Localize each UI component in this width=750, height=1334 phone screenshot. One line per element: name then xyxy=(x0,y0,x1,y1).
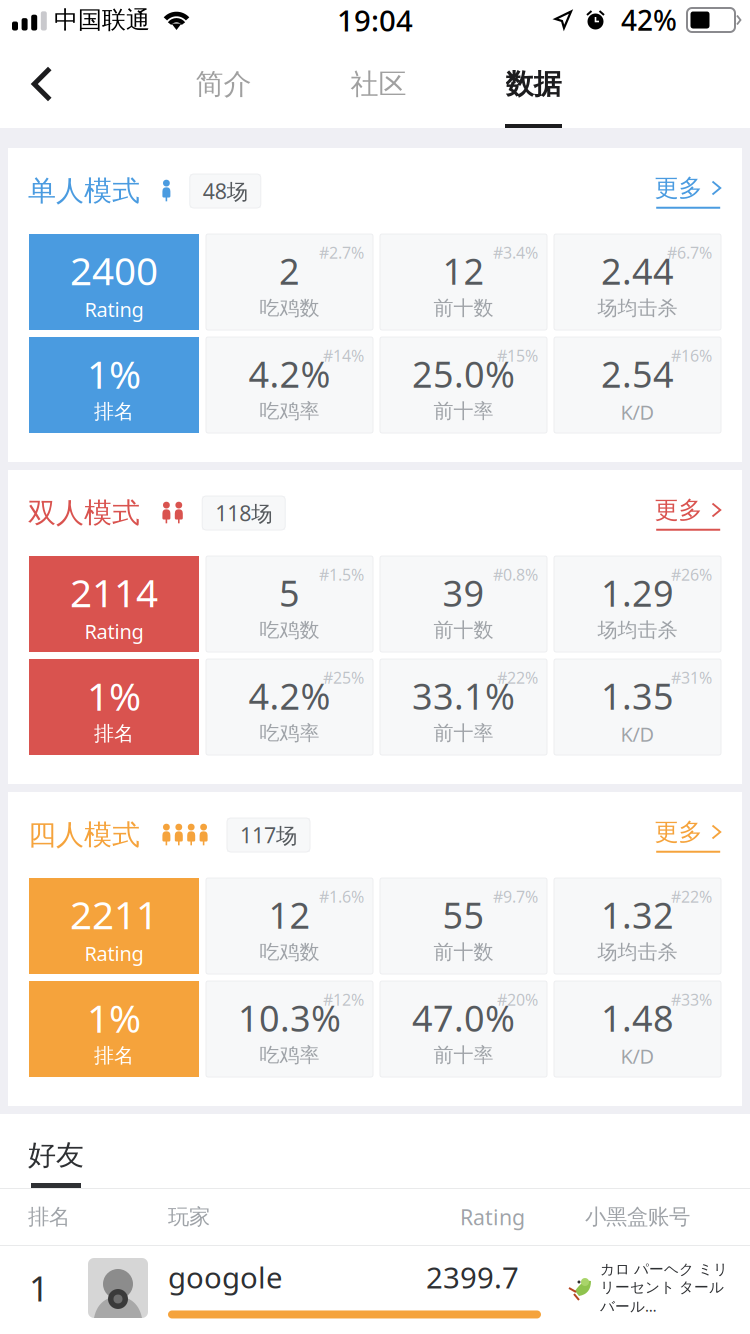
button[interactable]: 1 xyxy=(0,1246,750,1330)
staticText: 前十率 xyxy=(433,1043,493,1067)
staticText: 2211 xyxy=(70,888,158,940)
staticText: K/D xyxy=(620,1043,654,1069)
staticText: 排名 xyxy=(94,399,134,424)
staticText: 1 xyxy=(29,1265,49,1311)
staticText: 前十率 xyxy=(433,721,493,745)
staticText: #14% xyxy=(323,345,364,366)
button[interactable]: 更多 xyxy=(654,817,722,853)
staticText: 前十数 xyxy=(433,296,493,320)
staticText: #15% xyxy=(497,345,538,366)
staticText: 前十率 xyxy=(433,399,493,423)
staticText: 12 xyxy=(268,891,310,939)
staticText: 117场 xyxy=(240,821,297,849)
staticText: 1.32 xyxy=(601,891,674,939)
staticText: #6.7% xyxy=(667,242,712,263)
button[interactable]: 社区 xyxy=(301,40,456,128)
staticText: 吃鸡率 xyxy=(259,721,319,745)
staticText: 排名 xyxy=(94,1043,134,1068)
staticText: #22% xyxy=(671,886,712,907)
button[interactable]: 更多 xyxy=(654,495,722,531)
staticText: 场均击杀 xyxy=(597,296,677,320)
staticText: #9.7% xyxy=(493,886,538,907)
staticText: Rating xyxy=(84,296,143,322)
staticText: #12% xyxy=(323,989,364,1010)
staticText: #20% xyxy=(497,989,538,1010)
staticText: 玩家 xyxy=(168,1204,210,1230)
staticText: #1.5% xyxy=(319,564,364,585)
staticText: 双人模式 xyxy=(28,496,140,530)
staticText: 小黑盒账号 xyxy=(585,1204,690,1230)
staticText: #25% xyxy=(323,667,364,688)
staticText: 前十数 xyxy=(433,618,493,642)
staticText: 社区 xyxy=(350,67,406,101)
button[interactable]: Back xyxy=(0,40,84,128)
staticText: 场均击杀 xyxy=(597,940,677,964)
staticText: 19:04 xyxy=(337,0,413,39)
staticText: #33% xyxy=(671,989,712,1010)
staticText: 2400 xyxy=(70,244,158,296)
staticText: 2114 xyxy=(70,566,158,618)
staticText: 118场 xyxy=(215,499,272,527)
staticText: Rating xyxy=(84,940,143,966)
staticText: 2 xyxy=(279,247,300,295)
staticText: 2.44 xyxy=(601,247,674,295)
staticText: 吃鸡数 xyxy=(259,940,319,964)
staticText: #3.4% xyxy=(493,242,538,263)
staticText: #31% xyxy=(671,667,712,688)
staticText: #26% xyxy=(671,564,712,585)
staticText: K/D xyxy=(620,399,654,425)
button[interactable]: 更多 xyxy=(654,173,722,209)
staticText: 4.2% xyxy=(248,672,330,720)
staticText: 47.0% xyxy=(412,994,515,1042)
staticText: 前十数 xyxy=(433,940,493,964)
staticText: 1.35 xyxy=(601,672,674,720)
staticText: 10.3% xyxy=(238,994,341,1042)
staticText: 12 xyxy=(442,247,484,295)
staticText: 2.54 xyxy=(601,350,674,398)
staticText: #0.8% xyxy=(493,564,538,585)
staticText: Rating xyxy=(84,618,143,644)
staticText: 好友 xyxy=(28,1138,84,1172)
staticText: 吃鸡率 xyxy=(259,1043,319,1067)
staticText: 1% xyxy=(87,348,141,399)
staticText: 1% xyxy=(87,992,141,1043)
staticText: 1.48 xyxy=(601,994,674,1042)
button[interactable]: 数据 xyxy=(456,40,611,128)
staticText: 39 xyxy=(442,569,484,617)
staticText: 更多 xyxy=(654,495,702,525)
staticText: #16% xyxy=(671,345,712,366)
button[interactable]: 简介 xyxy=(146,40,301,128)
staticText: 单人模式 xyxy=(28,174,140,208)
staticText: 数据 xyxy=(505,67,561,101)
staticText: 2399.7 xyxy=(426,1257,519,1296)
staticText: 33.1% xyxy=(412,672,515,720)
staticText: 25.0% xyxy=(412,350,515,398)
staticText: Rating xyxy=(460,1203,525,1231)
staticText: 1.29 xyxy=(601,569,674,617)
button[interactable]: 好友 xyxy=(28,1114,84,1188)
staticText: 中国联通 xyxy=(54,5,150,35)
staticText: 5 xyxy=(279,569,300,617)
staticText: K/D xyxy=(620,721,654,747)
staticText: 简介 xyxy=(195,67,251,101)
staticText: 55 xyxy=(442,891,484,939)
staticText: 场均击杀 xyxy=(597,618,677,642)
staticText: 更多 xyxy=(654,817,702,847)
staticText: 吃鸡率 xyxy=(259,399,319,423)
staticText: 更多 xyxy=(654,173,702,203)
staticText: カロ パーヘク ミリ リーセント タール バール… xyxy=(600,1260,728,1316)
staticText: 吃鸡数 xyxy=(259,296,319,320)
staticText: #2.7% xyxy=(319,242,364,263)
staticText: 排名 xyxy=(94,721,134,746)
staticText: #1.6% xyxy=(319,886,364,907)
staticText: #22% xyxy=(497,667,538,688)
staticText: 四人模式 xyxy=(28,818,140,852)
staticText: 1% xyxy=(87,670,141,721)
staticText: 42% xyxy=(621,1,677,39)
staticText: 48场 xyxy=(203,177,248,205)
staticText: 排名 xyxy=(28,1204,70,1230)
staticText: 4.2% xyxy=(248,350,330,398)
staticText: googole xyxy=(168,1257,283,1296)
staticText: 吃鸡数 xyxy=(259,618,319,642)
